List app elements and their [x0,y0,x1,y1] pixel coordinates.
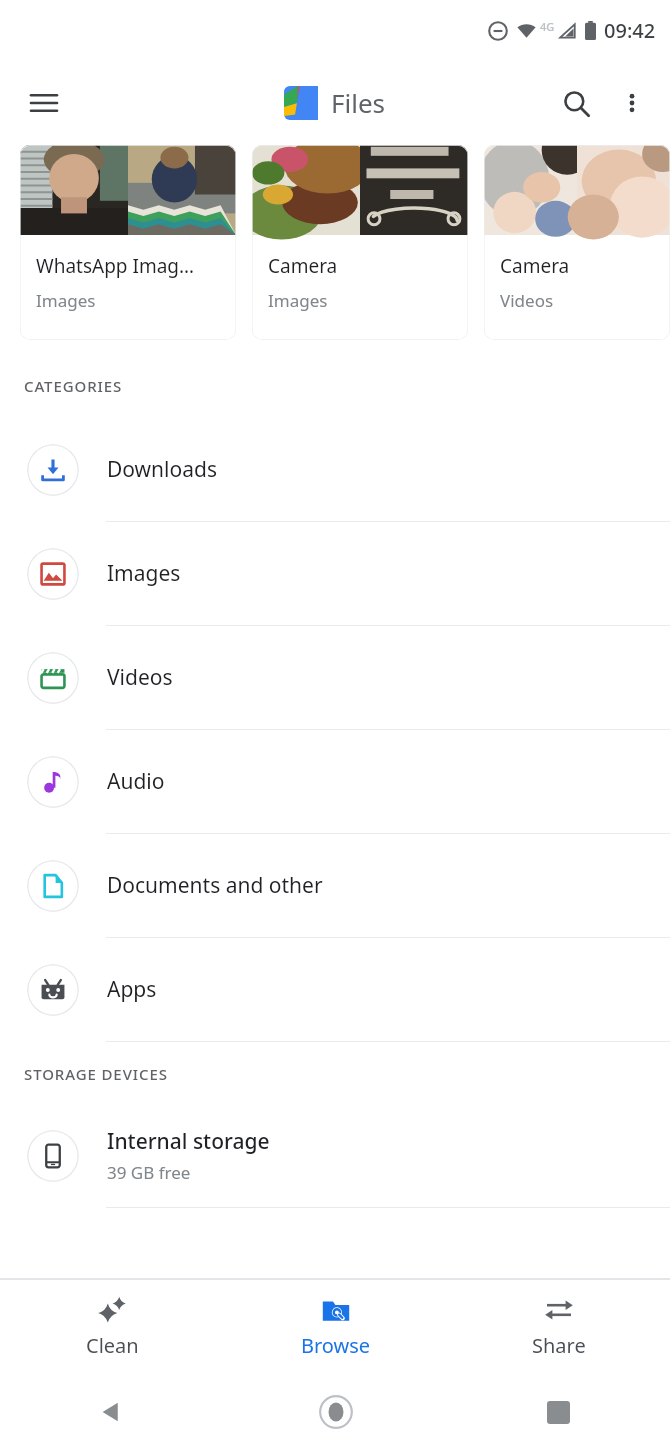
button[interactable]: Back [0,1373,224,1451]
button[interactable]: Images [0,522,670,625]
staticText: Browse [301,1332,371,1359]
staticText: Files [331,85,386,120]
button[interactable]: Home [224,1373,447,1451]
button[interactable]: Recent apps [447,1373,670,1451]
staticText: Videos [500,289,554,312]
staticText: Documents and other [107,871,323,900]
staticText: Camera [500,253,570,279]
button[interactable]: Camera [484,145,670,340]
button[interactable]: Clean [0,1280,224,1373]
button[interactable]: Documents and other [0,834,670,937]
staticText: Images [36,289,96,312]
button[interactable]: Downloads [0,418,670,521]
button[interactable]: WhatsApp Imag… [20,145,236,340]
button[interactable]: Internal storage [0,1104,670,1207]
staticText: WhatsApp Imag… [36,253,195,279]
staticText: Internal storage [107,1127,270,1156]
staticText: Images [268,289,328,312]
button[interactable]: Apps [0,938,670,1041]
staticText: STORAGE DEVICES [24,1064,168,1084]
staticText: 4G [540,19,555,34]
button[interactable]: Share [447,1280,670,1373]
button[interactable]: Camera [252,145,468,340]
staticText: Downloads [107,455,217,484]
button[interactable]: Browse [224,1280,447,1373]
button[interactable]: Open navigation menu [16,75,72,131]
staticText: CATEGORIES [24,376,123,396]
staticText: Clean [86,1332,139,1359]
button[interactable]: Videos [0,626,670,729]
staticText: 39 GB free [107,1161,191,1184]
staticText: 09:42 [604,17,656,44]
staticText: Audio [107,767,165,796]
staticText: Videos [107,663,173,692]
staticText: Camera [268,253,338,279]
staticText: Apps [107,975,157,1004]
staticText: Images [107,559,181,588]
button[interactable]: Audio [0,730,670,833]
button[interactable]: More options [604,75,660,131]
staticText: Share [532,1332,586,1359]
button[interactable]: Search [548,75,604,131]
